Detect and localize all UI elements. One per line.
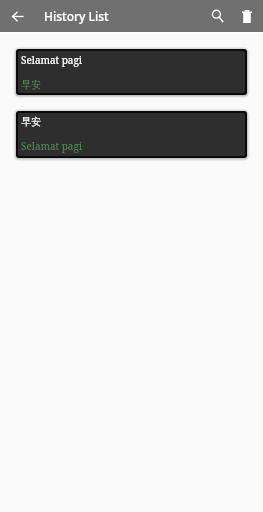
- staticText: Selamat pagi: [21, 139, 83, 153]
- button[interactable]: 早安: [16, 111, 247, 158]
- staticText: 早安: [21, 115, 41, 128]
- button[interactable]: Selamat pagi: [16, 49, 247, 95]
- staticText: 早安: [21, 78, 41, 91]
- button[interactable]: Back: [5, 4, 29, 28]
- staticText: Selamat pagi: [21, 53, 83, 67]
- button[interactable]: Delete: [232, 1, 262, 31]
- button[interactable]: Search: [202, 1, 232, 31]
- staticText: History List: [44, 8, 109, 24]
